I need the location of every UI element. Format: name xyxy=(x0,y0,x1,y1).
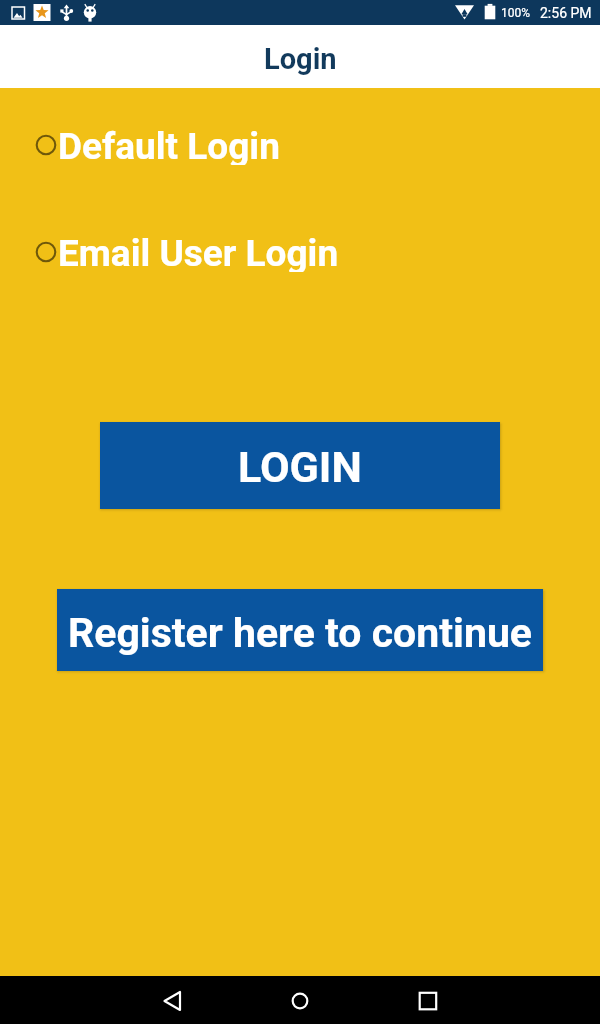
button[interactable]: Back xyxy=(148,976,196,1024)
staticText: Login xyxy=(264,42,337,76)
button[interactable]: Home xyxy=(276,976,324,1024)
staticText: LOGIN xyxy=(238,442,362,492)
button[interactable]: LOGIN xyxy=(100,422,500,509)
button[interactable]: Email User Login xyxy=(0,232,600,272)
button[interactable]: Recent apps xyxy=(404,976,452,1024)
staticText: Default Login xyxy=(58,125,280,165)
staticText: 2:56 PM xyxy=(540,5,592,21)
button[interactable]: Default Login xyxy=(0,125,600,165)
staticText: Register here to continue xyxy=(68,609,532,657)
button[interactable]: Register here to continue xyxy=(57,589,543,671)
staticText: 100% xyxy=(501,6,531,20)
staticText: Email User Login xyxy=(58,232,339,272)
